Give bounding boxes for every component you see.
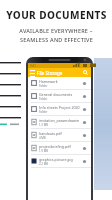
button[interactable]: More options for invitation_paramdrawing… <box>80 118 88 126</box>
staticText: Folder <box>39 97 48 101</box>
staticText: 4 MB <box>39 136 46 140</box>
button[interactable]: Open navigation menu <box>28 68 37 77</box>
button[interactable]: More options for Info sheets Project 202… <box>80 105 88 113</box>
button[interactable]: More options for projectbriefing.pdf <box>80 144 88 152</box>
staticText: 2.2 MB <box>39 162 49 166</box>
staticText: Homework <box>39 79 58 84</box>
button[interactable]: Search <box>81 68 90 77</box>
button[interactable]: graphics-picture.jpg <box>28 155 91 167</box>
button[interactable]: More options for handouts.pdf <box>80 131 88 139</box>
button[interactable]: More options for Homework <box>80 79 88 87</box>
staticText: SEAMLESS AND EFFECTIVE <box>20 36 93 43</box>
staticText: 9:41 <box>30 64 36 68</box>
button[interactable]: More options for General documents <box>80 92 88 100</box>
staticText: General documents <box>39 92 73 97</box>
staticText: handouts.pdf <box>39 131 62 136</box>
staticText: Info sheets Project 2020 <box>39 105 80 110</box>
button[interactable]: invitation_paramdrawing.docx <box>28 116 91 128</box>
staticText: YOUR DOCUMENTS <box>6 8 107 22</box>
staticText: 1.3 MB <box>39 123 49 127</box>
staticText: Folder <box>39 110 48 114</box>
staticText: graphics-picture.jpg <box>39 157 73 162</box>
staticText: AVAILABLE EVERYWHERE – <box>19 27 93 34</box>
button[interactable]: projectbriefing.pdf <box>28 142 91 154</box>
button[interactable]: Homework <box>28 77 91 89</box>
staticText: Folder <box>39 84 48 88</box>
button[interactable]: handouts.pdf <box>28 129 91 141</box>
staticText: invitation_paramdrawing.docx <box>39 118 80 123</box>
button[interactable]: Info sheets Project 2020 <box>28 103 91 115</box>
staticText: File Storage <box>37 70 63 76</box>
button[interactable]: General documents <box>28 90 91 102</box>
staticText: 1.9 MB <box>39 149 49 153</box>
staticText: projectbriefing.pdf <box>39 144 71 149</box>
button[interactable]: More options for graphics-picture.jpg <box>80 157 88 165</box>
